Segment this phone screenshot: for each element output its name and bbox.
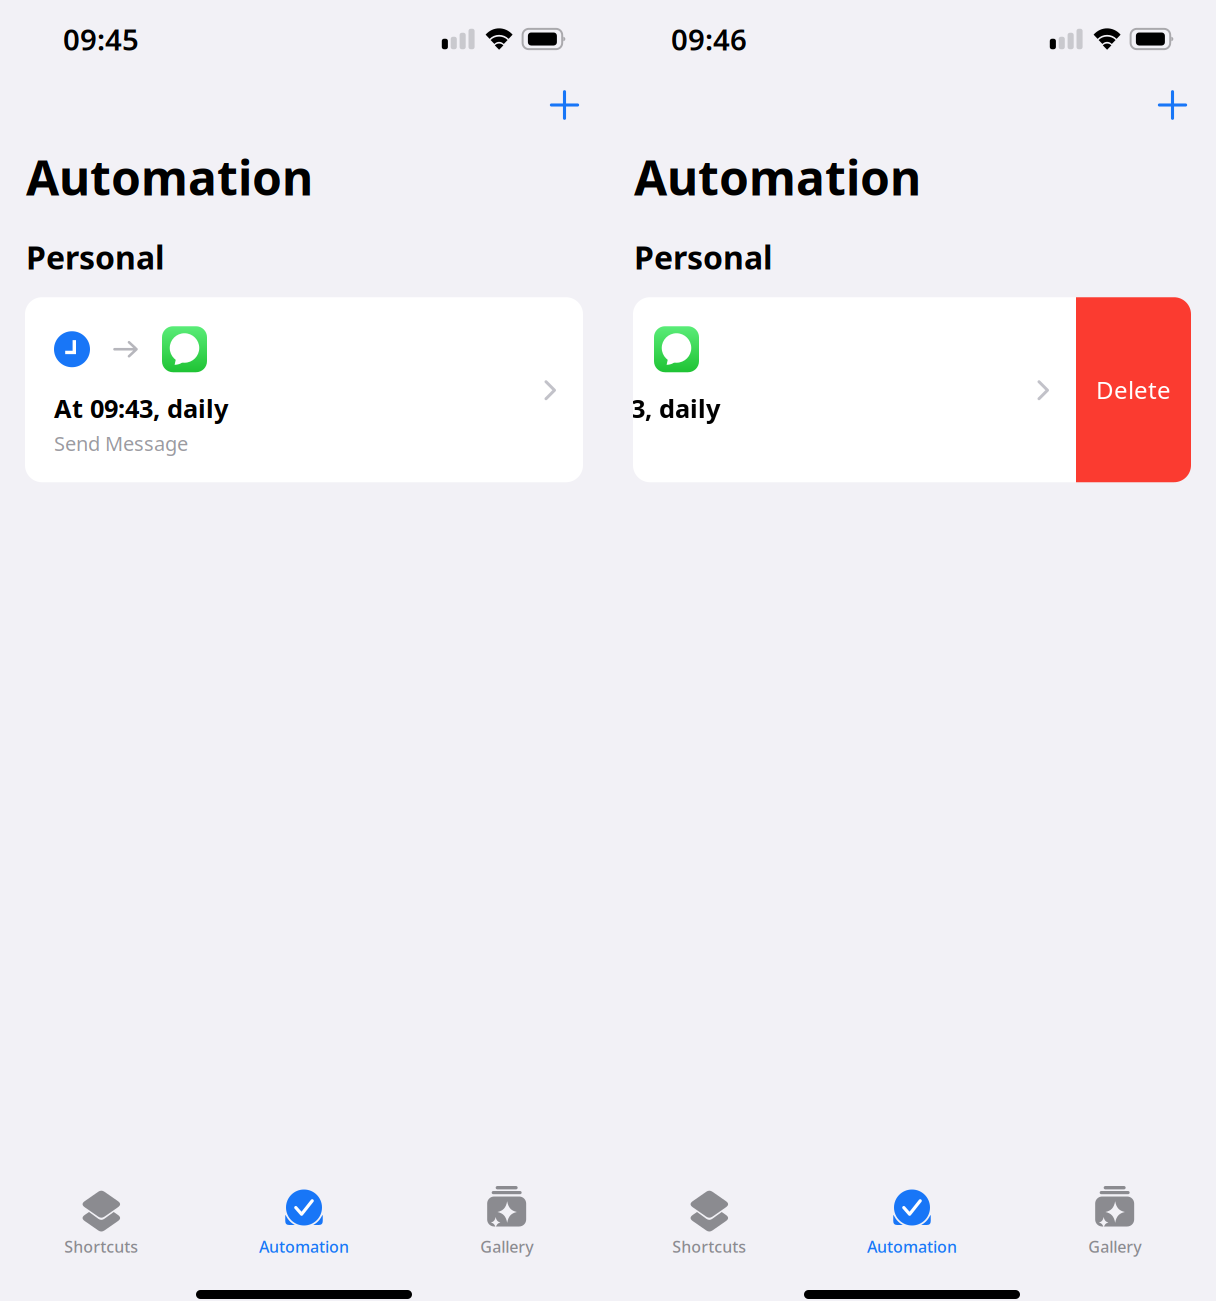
button[interactable]: At 09:43, daily (25, 297, 583, 482)
button[interactable]: Delete (1076, 297, 1191, 482)
staticText: Automation (634, 145, 921, 209)
staticText: Personal (26, 236, 165, 278)
staticText: Gallery (1088, 1236, 1141, 1257)
staticText: Gallery (480, 1236, 533, 1257)
button[interactable]: Automation (203, 1181, 405, 1262)
button[interactable]: Shortcuts (0, 1181, 203, 1262)
button[interactable]: At 09:43, daily (633, 297, 1076, 482)
staticText: Automation (26, 145, 313, 209)
button[interactable]: Gallery (405, 1181, 608, 1262)
staticText: At 09:43, daily (546, 391, 720, 425)
staticText: Shortcuts (64, 1236, 138, 1257)
button[interactable]: Shortcuts (608, 1181, 811, 1262)
staticText: 09:46 (671, 19, 747, 58)
staticText: 09:45 (63, 19, 139, 58)
staticText: Automation (259, 1236, 349, 1257)
button[interactable]: New Automation (538, 78, 591, 132)
staticText: Personal (634, 236, 773, 278)
staticText: Automation (867, 1236, 957, 1257)
staticText: Delete (1096, 374, 1171, 406)
button[interactable]: New Automation (1146, 78, 1199, 132)
button[interactable]: Automation (811, 1181, 1013, 1262)
button[interactable]: Gallery (1013, 1181, 1216, 1262)
staticText: Shortcuts (672, 1236, 746, 1257)
staticText: At 09:43, daily (54, 391, 228, 425)
staticText: Send Message (54, 430, 188, 456)
